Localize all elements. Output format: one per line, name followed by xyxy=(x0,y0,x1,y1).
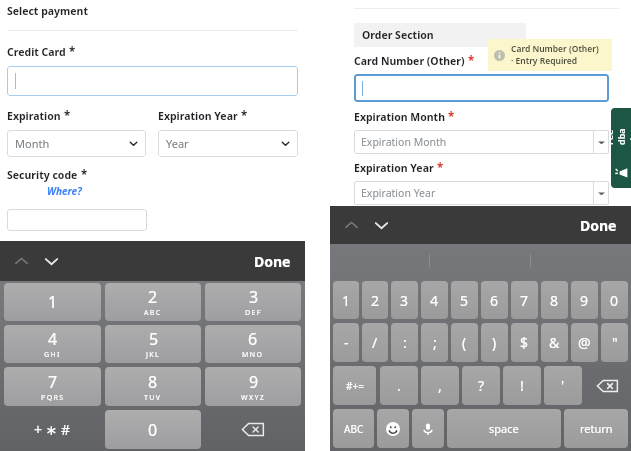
button[interactable]: Year xyxy=(158,130,298,157)
staticText: Expiration Month xyxy=(361,135,447,149)
staticText: ) xyxy=(492,333,497,352)
button[interactable]: 9 xyxy=(205,367,301,406)
staticText: : xyxy=(403,333,407,352)
button[interactable]: Delete xyxy=(586,366,628,405)
button[interactable]: " xyxy=(601,323,628,362)
button[interactable]: Done xyxy=(250,249,295,274)
staticText: Year xyxy=(166,136,189,151)
button[interactable] xyxy=(7,66,298,96)
staticText: #+= xyxy=(346,379,364,393)
button[interactable] xyxy=(7,209,147,231)
staticText: * xyxy=(241,108,248,124)
staticText: return xyxy=(580,421,613,436)
button[interactable]: Expiration Month xyxy=(354,130,609,154)
staticText: JKL xyxy=(146,350,161,360)
button[interactable]: Feedback xyxy=(611,108,631,188)
staticText: Card Number (Other) xyxy=(511,43,599,55)
staticText: ! xyxy=(520,376,524,395)
staticText: Month xyxy=(15,136,50,151)
staticText: ' xyxy=(561,376,565,395)
staticText: WXYZ xyxy=(241,393,266,403)
button[interactable] xyxy=(354,74,609,102)
button[interactable]: , xyxy=(421,366,459,405)
button[interactable]: #+= xyxy=(333,366,376,405)
button[interactable]: 1 xyxy=(4,283,101,321)
button[interactable]: ' xyxy=(544,366,582,405)
button[interactable]: - xyxy=(333,323,359,362)
staticText: + ∗ # xyxy=(34,420,71,439)
button[interactable]: : xyxy=(391,323,418,362)
button[interactable]: 3 xyxy=(205,283,301,321)
button[interactable]: 5 xyxy=(451,281,478,319)
button[interactable]: 2 xyxy=(362,281,388,319)
button[interactable]: 9 xyxy=(571,281,598,319)
staticText: Security code xyxy=(7,168,78,182)
button[interactable]: Symbols plus star hash xyxy=(4,410,101,449)
button[interactable]: Done xyxy=(576,213,621,238)
staticText: ABC xyxy=(144,308,162,318)
button[interactable]: Month xyxy=(7,130,146,157)
button[interactable]: @ xyxy=(571,323,598,362)
staticText: Done xyxy=(254,252,291,271)
button[interactable]: ABC xyxy=(333,409,374,448)
button[interactable]: ! xyxy=(503,366,541,405)
staticText: Card Number (Other) xyxy=(354,54,465,68)
staticText: 1 xyxy=(342,291,351,310)
button[interactable]: ? xyxy=(462,366,500,405)
button[interactable]: Delete xyxy=(205,410,301,449)
staticText: Order Section xyxy=(362,28,434,42)
button[interactable]: 6 xyxy=(481,281,508,319)
staticText: * xyxy=(69,44,76,60)
button[interactable]: Next field xyxy=(40,250,62,272)
staticText: ? xyxy=(478,376,485,395)
button[interactable]: & xyxy=(541,323,568,362)
staticText: Credit Card xyxy=(7,45,66,59)
staticText: - xyxy=(344,333,349,352)
staticText: * xyxy=(468,53,475,69)
button[interactable]: 5 xyxy=(105,325,201,363)
button[interactable]: 0 xyxy=(601,281,628,319)
button[interactable]: 0 xyxy=(105,410,201,449)
staticText: DEF xyxy=(245,308,262,318)
button[interactable]: Emoji xyxy=(377,409,409,448)
button[interactable]: return xyxy=(564,409,628,448)
staticText: & xyxy=(549,333,560,352)
button[interactable]: 7 xyxy=(511,281,538,319)
staticText: 5 xyxy=(460,291,469,310)
staticText: * xyxy=(448,109,455,125)
staticText: 0 xyxy=(148,419,158,441)
staticText: 7 xyxy=(520,291,529,310)
staticText: , xyxy=(438,376,442,395)
staticText: 3 xyxy=(400,291,409,310)
button[interactable]: $ xyxy=(511,323,538,362)
button[interactable]: 2 xyxy=(105,283,201,321)
staticText: 9 xyxy=(580,291,589,310)
button[interactable]: 3 xyxy=(391,281,418,319)
button[interactable]: Next field xyxy=(370,214,392,236)
button[interactable]: 1 xyxy=(333,281,359,319)
button[interactable]: 8 xyxy=(105,367,201,406)
staticText: Expiration Month xyxy=(354,110,445,124)
button[interactable]: Previous field xyxy=(10,250,32,272)
button[interactable]: ; xyxy=(421,323,448,362)
staticText: Expiration xyxy=(7,109,61,123)
button[interactable]: Where? xyxy=(47,184,82,198)
button[interactable]: 7 xyxy=(4,367,101,406)
staticText: ( xyxy=(462,333,467,352)
staticText: 3 xyxy=(249,286,259,308)
button[interactable]: . xyxy=(380,366,418,405)
button[interactable]: 6 xyxy=(205,325,301,363)
button[interactable]: 4 xyxy=(4,325,101,363)
button[interactable]: ( xyxy=(451,323,478,362)
button[interactable]: Previous field xyxy=(340,214,362,236)
button[interactable]: ) xyxy=(481,323,508,362)
button[interactable]: space xyxy=(447,409,561,448)
staticText: Done xyxy=(580,216,617,235)
button[interactable]: Voice input xyxy=(412,409,444,448)
button[interactable]: / xyxy=(362,323,388,362)
staticText: 4 xyxy=(48,328,58,350)
staticText: ABC xyxy=(344,422,364,436)
button[interactable]: 4 xyxy=(421,281,448,319)
button[interactable]: Expiration Year xyxy=(354,181,609,205)
button[interactable]: 8 xyxy=(541,281,568,319)
